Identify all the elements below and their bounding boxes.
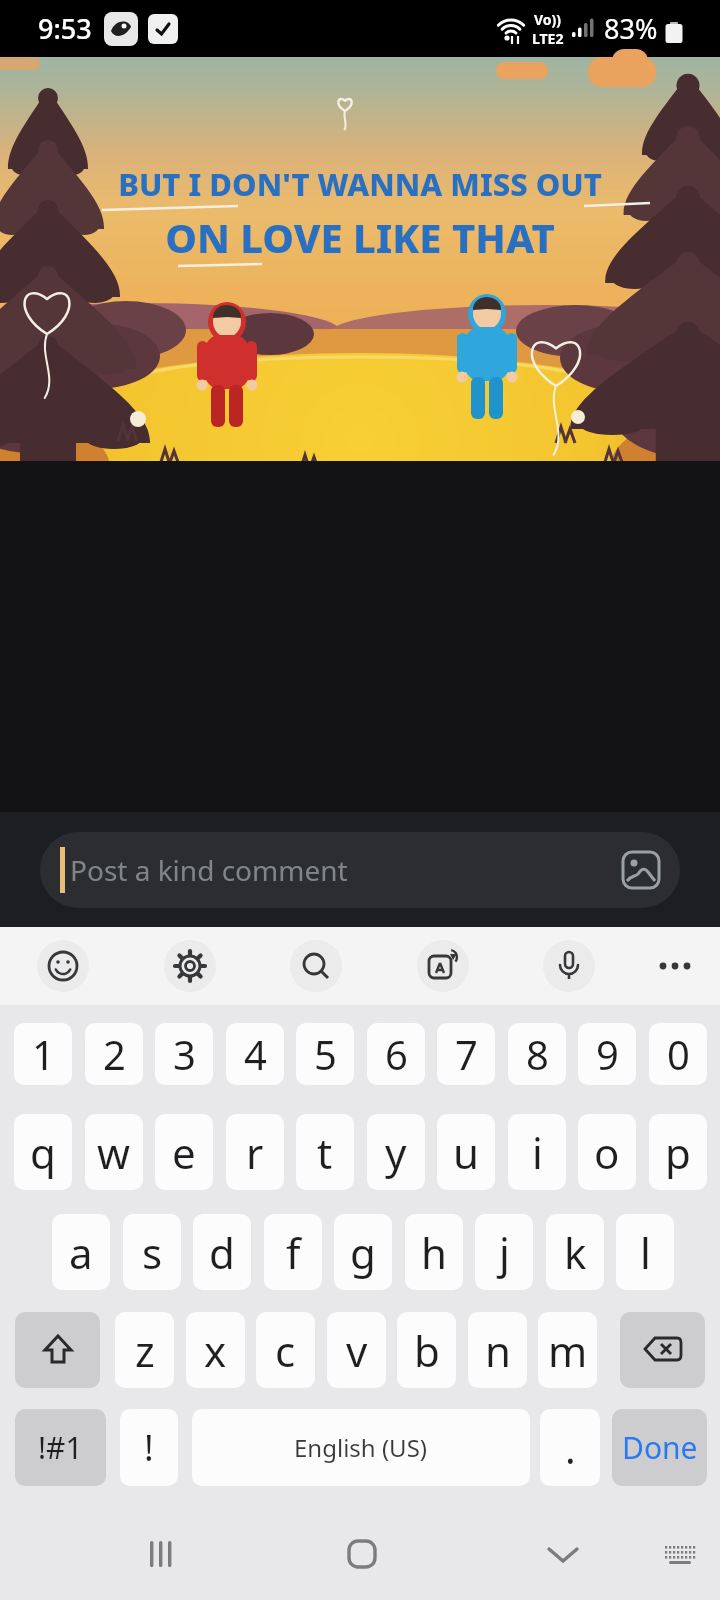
button[interactable]: . xyxy=(540,1409,600,1486)
button[interactable]: v xyxy=(327,1312,386,1388)
staticText: n xyxy=(485,1322,511,1379)
button[interactable]: 0 xyxy=(649,1023,707,1085)
button[interactable]: !#1 xyxy=(15,1409,106,1486)
staticText: English (US) xyxy=(294,1431,428,1464)
button[interactable]: r xyxy=(226,1114,284,1190)
staticText: 9 xyxy=(596,1027,619,1081)
button[interactable]: q xyxy=(14,1114,72,1190)
button[interactable]: c xyxy=(256,1312,315,1388)
staticText: 3 xyxy=(173,1027,196,1081)
staticText: 0 xyxy=(667,1027,690,1081)
staticText: 1 xyxy=(32,1027,55,1081)
staticText: o xyxy=(594,1124,620,1181)
button[interactable]: x xyxy=(186,1312,245,1388)
button[interactable]: y xyxy=(367,1114,425,1190)
button[interactable]: 4 xyxy=(226,1023,284,1085)
button[interactable] xyxy=(543,940,595,992)
staticText: i xyxy=(532,1124,543,1181)
button[interactable] xyxy=(652,1526,708,1582)
staticText: q xyxy=(30,1124,56,1181)
staticText: g xyxy=(350,1224,376,1281)
staticText: y xyxy=(385,1124,407,1181)
button[interactable]: 5 xyxy=(296,1023,354,1085)
staticText: LTE2 xyxy=(532,29,564,48)
staticText: b xyxy=(414,1322,440,1379)
staticText: 6 xyxy=(385,1027,408,1081)
staticText: d xyxy=(209,1224,235,1281)
staticText: z xyxy=(135,1322,155,1379)
button[interactable] xyxy=(330,1522,394,1586)
staticText: . xyxy=(565,1421,576,1475)
button[interactable]: b xyxy=(397,1312,456,1388)
staticText: 7 xyxy=(455,1027,478,1081)
button[interactable]: i xyxy=(508,1114,566,1190)
staticText: w xyxy=(97,1124,131,1181)
button[interactable]: w xyxy=(85,1114,143,1190)
button[interactable]: d xyxy=(193,1214,251,1290)
button[interactable]: u xyxy=(437,1114,495,1190)
staticText: k xyxy=(564,1224,587,1281)
button[interactable]: ! xyxy=(120,1409,178,1486)
button[interactable]: o xyxy=(578,1114,636,1190)
button[interactable]: 3 xyxy=(155,1023,213,1085)
button[interactable]: Post a kind comment xyxy=(40,832,680,908)
staticText: 83% xyxy=(604,10,658,47)
staticText: l xyxy=(640,1224,651,1281)
button[interactable]: z xyxy=(115,1312,174,1388)
staticText: Vo)) xyxy=(534,10,562,29)
button[interactable]: s xyxy=(123,1214,181,1290)
button[interactable]: 8 xyxy=(508,1023,566,1085)
button[interactable]: j xyxy=(475,1214,533,1290)
staticText: Done xyxy=(622,1427,698,1468)
staticText: a xyxy=(69,1224,93,1281)
button[interactable] xyxy=(620,1312,705,1388)
button[interactable]: n xyxy=(468,1312,527,1388)
button[interactable]: f xyxy=(264,1214,322,1290)
button[interactable]: h xyxy=(405,1214,463,1290)
button[interactable]: Done xyxy=(612,1409,707,1486)
staticText: 2 xyxy=(103,1027,126,1081)
button[interactable]: 9 xyxy=(578,1023,636,1085)
button[interactable]: 7 xyxy=(437,1023,495,1085)
staticText: f xyxy=(286,1224,301,1281)
staticText: BUT I DON'T WANNA MISS OUT xyxy=(118,163,602,205)
button[interactable]: t xyxy=(296,1114,354,1190)
staticText: v xyxy=(346,1322,368,1379)
staticText: t xyxy=(317,1124,333,1181)
button[interactable]: e xyxy=(155,1114,213,1190)
staticText: s xyxy=(142,1224,163,1281)
button[interactable] xyxy=(649,940,701,992)
button[interactable]: a xyxy=(52,1214,110,1290)
staticText: !#1 xyxy=(38,1427,83,1468)
staticText: x xyxy=(204,1322,227,1379)
button[interactable]: 1 xyxy=(14,1023,72,1085)
button[interactable] xyxy=(15,1312,100,1388)
button[interactable]: g xyxy=(334,1214,392,1290)
staticText: j xyxy=(499,1224,510,1281)
button[interactable] xyxy=(37,940,89,992)
button[interactable] xyxy=(164,940,216,992)
button[interactable]: 2 xyxy=(85,1023,143,1085)
button[interactable] xyxy=(531,1522,595,1586)
staticText: h xyxy=(421,1224,447,1281)
staticText: Post a kind comment xyxy=(70,851,348,889)
button[interactable]: p xyxy=(649,1114,707,1190)
button[interactable]: 6 xyxy=(367,1023,425,1085)
button[interactable]: English (US) xyxy=(192,1409,530,1486)
button[interactable] xyxy=(290,940,342,992)
staticText: ! xyxy=(144,1423,154,1472)
staticText: 9:53 xyxy=(38,10,92,47)
staticText: 5 xyxy=(314,1027,337,1081)
button[interactable]: m xyxy=(538,1312,597,1388)
button[interactable] xyxy=(417,940,469,992)
button[interactable] xyxy=(130,1522,194,1586)
staticText: 8 xyxy=(526,1027,549,1081)
staticText: u xyxy=(453,1124,479,1181)
button[interactable] xyxy=(622,851,660,889)
button[interactable]: k xyxy=(546,1214,604,1290)
staticText: e xyxy=(172,1124,196,1181)
staticText: c xyxy=(275,1322,296,1379)
staticText: ON LOVE LIKE THAT xyxy=(165,210,555,264)
button[interactable]: l xyxy=(616,1214,674,1290)
staticText: m xyxy=(548,1322,588,1379)
